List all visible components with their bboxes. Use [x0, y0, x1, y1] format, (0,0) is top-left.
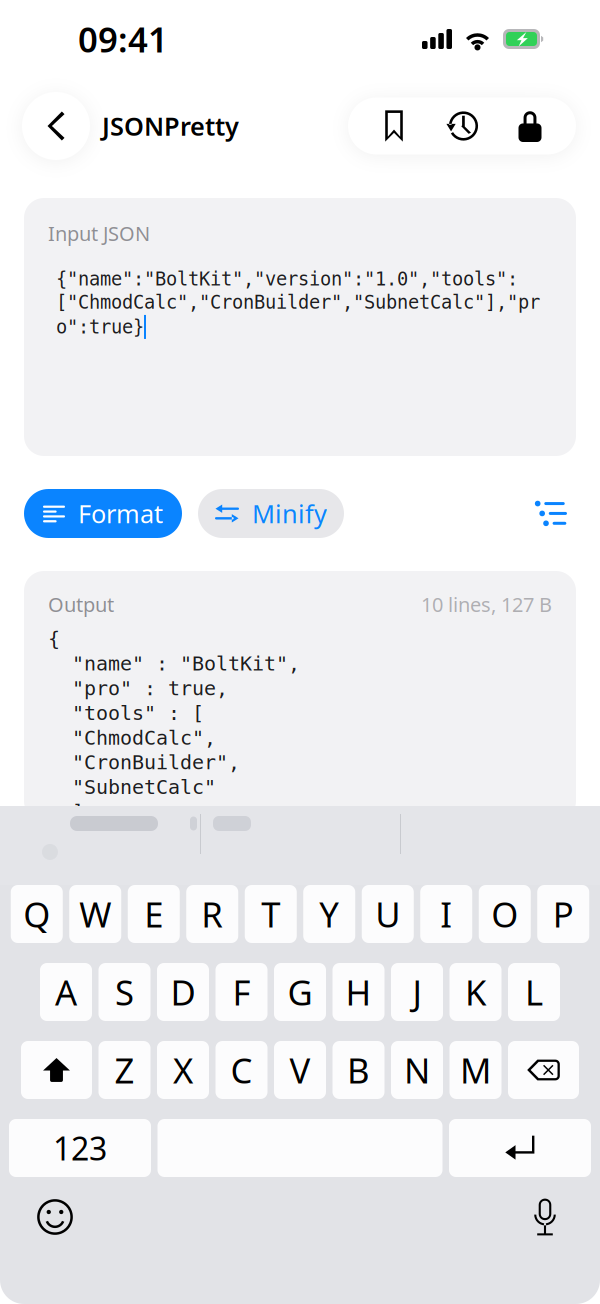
button[interactable]: D: [157, 963, 209, 1021]
button[interactable]: L: [508, 963, 560, 1021]
staticText: R: [201, 891, 223, 937]
staticText: {"name":"BoltKit","version":"1.0","tools…: [56, 269, 518, 290]
button[interactable]: H: [332, 963, 384, 1021]
staticText: C: [230, 1047, 252, 1093]
button[interactable]: Minify: [198, 489, 344, 538]
button[interactable]: Back: [22, 92, 90, 160]
button[interactable]: History: [428, 97, 496, 154]
button[interactable]: Emoji: [26, 1191, 84, 1243]
button[interactable]: K: [449, 963, 501, 1021]
button[interactable]: Z: [98, 1041, 150, 1099]
button[interactable]: B: [332, 1041, 384, 1099]
button[interactable]: G: [274, 963, 326, 1021]
button[interactable]: W: [69, 885, 121, 943]
button[interactable]: Dictation: [516, 1191, 574, 1243]
staticText: Input JSON: [48, 220, 150, 247]
button[interactable]: E: [128, 885, 180, 943]
button[interactable]: Return: [449, 1119, 591, 1177]
button[interactable]: O: [479, 885, 531, 943]
button[interactable]: T: [245, 885, 297, 943]
button[interactable]: R: [186, 885, 238, 943]
staticText: X: [173, 1047, 193, 1093]
staticText: E: [144, 891, 163, 937]
staticText: T: [261, 891, 280, 937]
button[interactable]: C: [215, 1041, 267, 1099]
staticText: J: [412, 969, 421, 1015]
staticText: JSONPretty: [102, 109, 239, 143]
button[interactable]: J: [391, 963, 443, 1021]
staticText: M: [460, 1047, 491, 1093]
staticText: A: [55, 969, 77, 1015]
staticText: 123: [53, 1127, 107, 1169]
staticText: "name" : "BoltKit",: [48, 652, 300, 675]
staticText: G: [287, 969, 312, 1015]
staticText: H: [345, 969, 371, 1015]
button[interactable]: Format: [24, 489, 182, 538]
button[interactable]: Q: [11, 885, 63, 943]
staticText: Y: [319, 891, 339, 937]
staticText: "tools" : [: [48, 702, 204, 724]
button[interactable]: I: [420, 885, 472, 943]
staticText: Z: [114, 1047, 134, 1093]
button[interactable]: N: [391, 1041, 443, 1099]
staticText: Format: [78, 497, 163, 530]
staticText: I: [440, 891, 452, 937]
button[interactable]: Y: [303, 885, 355, 943]
staticText: B: [347, 1047, 370, 1093]
staticText: "SubnetCalc": [48, 776, 216, 798]
staticText: ]: [48, 800, 84, 823]
staticText: N: [404, 1047, 430, 1093]
staticText: ["ChmodCalc","CronBuilder","SubnetCalc"]…: [56, 292, 540, 313]
staticText: O: [491, 891, 518, 937]
staticText: "CronBuilder",: [48, 751, 240, 774]
staticText: Output: [48, 591, 114, 618]
staticText: "pro" : true,: [48, 677, 228, 700]
staticText: U: [375, 891, 400, 937]
button[interactable]: 123: [9, 1119, 151, 1177]
button[interactable]: View options: [524, 486, 578, 540]
staticText: L: [525, 969, 543, 1015]
staticText: S: [115, 969, 134, 1015]
staticText: Q: [23, 891, 50, 937]
staticText: P: [553, 891, 574, 937]
staticText: Minify: [252, 497, 327, 530]
button[interactable]: P: [537, 885, 589, 943]
staticText: F: [232, 969, 250, 1015]
button[interactable]: V: [274, 1041, 326, 1099]
staticText: D: [170, 969, 195, 1015]
button[interactable]: X: [157, 1041, 209, 1099]
button[interactable]: U: [362, 885, 414, 943]
button[interactable]: Shift: [21, 1041, 92, 1099]
button[interactable]: Bookmark: [360, 97, 428, 154]
button[interactable]: Delete: [508, 1041, 579, 1099]
staticText: 10 lines, 127 B: [421, 591, 552, 618]
staticText: V: [289, 1047, 310, 1093]
button[interactable]: S: [98, 963, 150, 1021]
button[interactable]: M: [449, 1041, 501, 1099]
staticText: K: [465, 969, 486, 1015]
staticText: W: [79, 891, 111, 937]
staticText: o":true}: [56, 316, 144, 337]
staticText: "ChmodCalc",: [48, 726, 216, 749]
button[interactable]: A: [40, 963, 92, 1021]
staticText: 09:41: [78, 16, 168, 62]
button[interactable]: Lock: [496, 97, 564, 154]
button[interactable]: F: [215, 963, 267, 1021]
staticText: {: [48, 628, 60, 650]
